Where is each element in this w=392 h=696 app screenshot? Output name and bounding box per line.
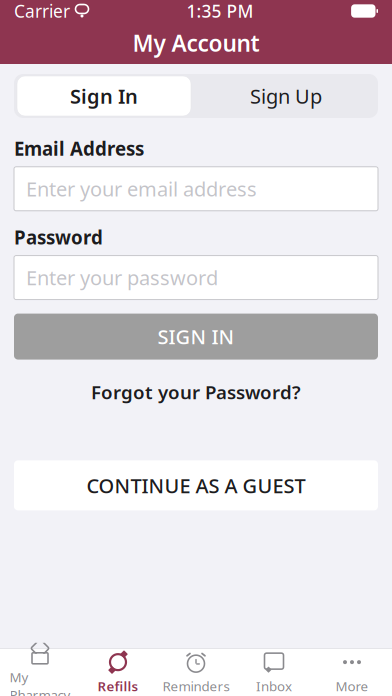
staticText: More [335, 677, 368, 695]
staticText: SIGN IN [157, 323, 234, 350]
button[interactable]: Forgot your Password? [77, 372, 315, 412]
button[interactable]: CONTINUE AS A GUEST [14, 460, 378, 510]
staticText: 1:35 PM [187, 0, 254, 22]
button[interactable]: My Pharmacy [1, 649, 79, 696]
button[interactable]: Sign In [14, 74, 194, 118]
staticText: Sign In [70, 83, 138, 109]
staticText: CONTINUE AS A GUEST [86, 472, 305, 499]
staticText: Enter your email address [26, 175, 257, 202]
staticText: Carrier [14, 0, 70, 22]
button[interactable]: Refills [79, 649, 157, 696]
staticText: Inbox [256, 677, 292, 695]
staticText: Email Address [14, 136, 144, 161]
button[interactable]: More [313, 649, 391, 696]
staticText: Refills [97, 677, 138, 695]
staticText: Sign Up [250, 83, 322, 109]
staticText: Reminders [162, 677, 229, 695]
staticText: My Account [132, 28, 259, 58]
button[interactable]: Reminders [157, 649, 235, 696]
staticText: Password [14, 225, 103, 250]
staticText: Forgot your Password? [91, 380, 301, 404]
button[interactable]: Inbox [235, 649, 313, 696]
staticText: My Pharmacy [9, 668, 70, 696]
button[interactable]: SIGN IN [14, 314, 378, 360]
button[interactable]: Sign Up [194, 74, 378, 118]
staticText: Enter your password [26, 264, 218, 291]
